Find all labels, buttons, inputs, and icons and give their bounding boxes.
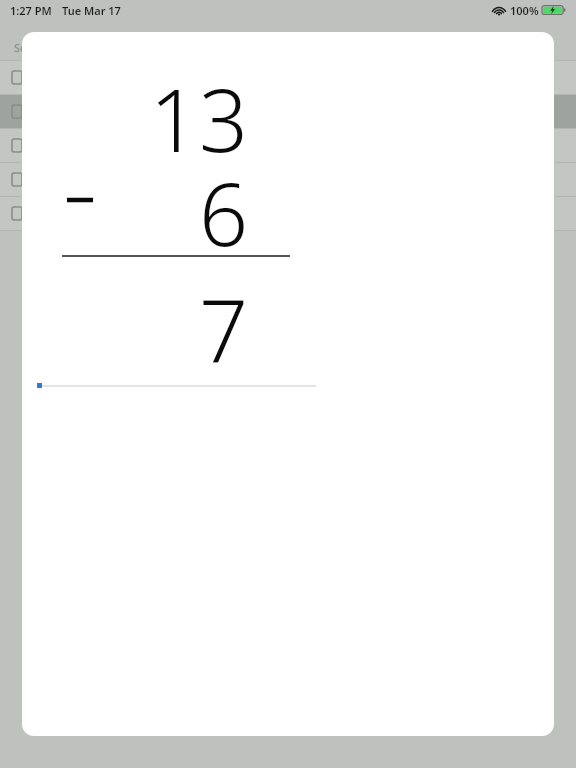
- staticText: 6: [198, 154, 248, 271]
- staticText: Tue Mar 17: [62, 3, 121, 18]
- staticText: 100%: [510, 3, 539, 18]
- button[interactable]: [0, 61, 576, 94]
- staticText: 13: [149, 60, 248, 177]
- button[interactable]: [0, 95, 576, 128]
- staticText: 1:27 PM: [10, 3, 52, 18]
- other: Wi-Fi: [492, 5, 506, 16]
- staticText: 7: [198, 270, 248, 387]
- button[interactable]: [0, 129, 576, 162]
- other: Battery charging: [542, 4, 566, 16]
- button[interactable]: [0, 163, 576, 196]
- button[interactable]: [0, 197, 576, 230]
- button[interactable]: [37, 373, 316, 397]
- staticText: Settings: [14, 40, 57, 55]
